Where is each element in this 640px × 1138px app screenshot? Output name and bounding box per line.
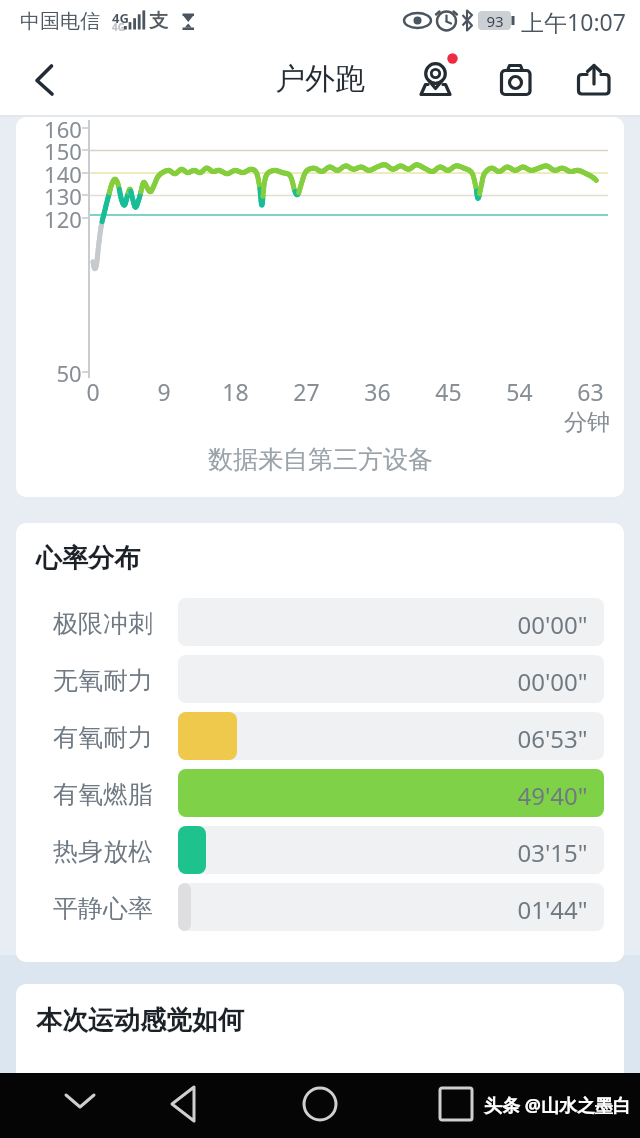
staticText: 130 [44, 181, 82, 209]
staticText: 极限冲刺 [53, 608, 153, 636]
button[interactable] [412, 52, 468, 108]
staticText: 63 [577, 376, 604, 404]
staticText: 00'00" [517, 665, 588, 693]
staticText: 160 [44, 114, 82, 142]
staticText: 无氧耐力 [53, 665, 153, 693]
button[interactable] [52, 1075, 108, 1135]
staticText: 9 [157, 376, 171, 404]
staticText: 00'00" [517, 608, 588, 636]
button[interactable] [490, 52, 546, 108]
staticText: 4G [112, 9, 129, 25]
button[interactable] [566, 52, 622, 108]
staticText: 分钟 [564, 408, 610, 436]
staticText: 有氧燃脂 [53, 779, 153, 807]
button[interactable] [428, 1075, 484, 1135]
staticText: 心率分布 [36, 542, 140, 575]
staticText: 50 [56, 358, 82, 386]
staticText: 27 [293, 376, 320, 404]
staticText: 上午10:07 [521, 6, 626, 34]
staticText: 06'53" [517, 722, 588, 750]
staticText: 18 [222, 376, 249, 404]
button[interactable] [155, 1075, 211, 1135]
staticText: 中国电信 [20, 9, 100, 34]
button[interactable] [16, 984, 624, 1073]
staticText: 有氧耐力 [53, 722, 153, 750]
staticText: 支 [149, 9, 168, 33]
staticText: 54 [506, 376, 533, 404]
staticText: 数据来自第三方设备 [208, 444, 433, 474]
staticText: 120 [44, 204, 82, 232]
staticText: 36 [364, 376, 391, 404]
staticText: 4G [112, 20, 125, 32]
staticText: 热身放松 [53, 836, 153, 864]
staticText: 93 [486, 11, 504, 30]
staticText: 01'44" [517, 893, 588, 921]
staticText: 49'40" [517, 779, 588, 807]
staticText: 140 [44, 159, 82, 187]
staticText: 150 [44, 136, 82, 164]
button[interactable] [24, 52, 80, 108]
button[interactable] [292, 1075, 348, 1135]
staticText: 头条 @山水之墨白 [484, 1093, 631, 1118]
staticText: 45 [435, 376, 462, 404]
staticText: 本次运动感觉如何 [36, 1004, 244, 1037]
staticText: 03'15" [517, 836, 588, 864]
staticText: 0 [86, 376, 100, 404]
staticText: 户外跑 [275, 60, 365, 98]
staticText: 平静心率 [53, 893, 153, 921]
